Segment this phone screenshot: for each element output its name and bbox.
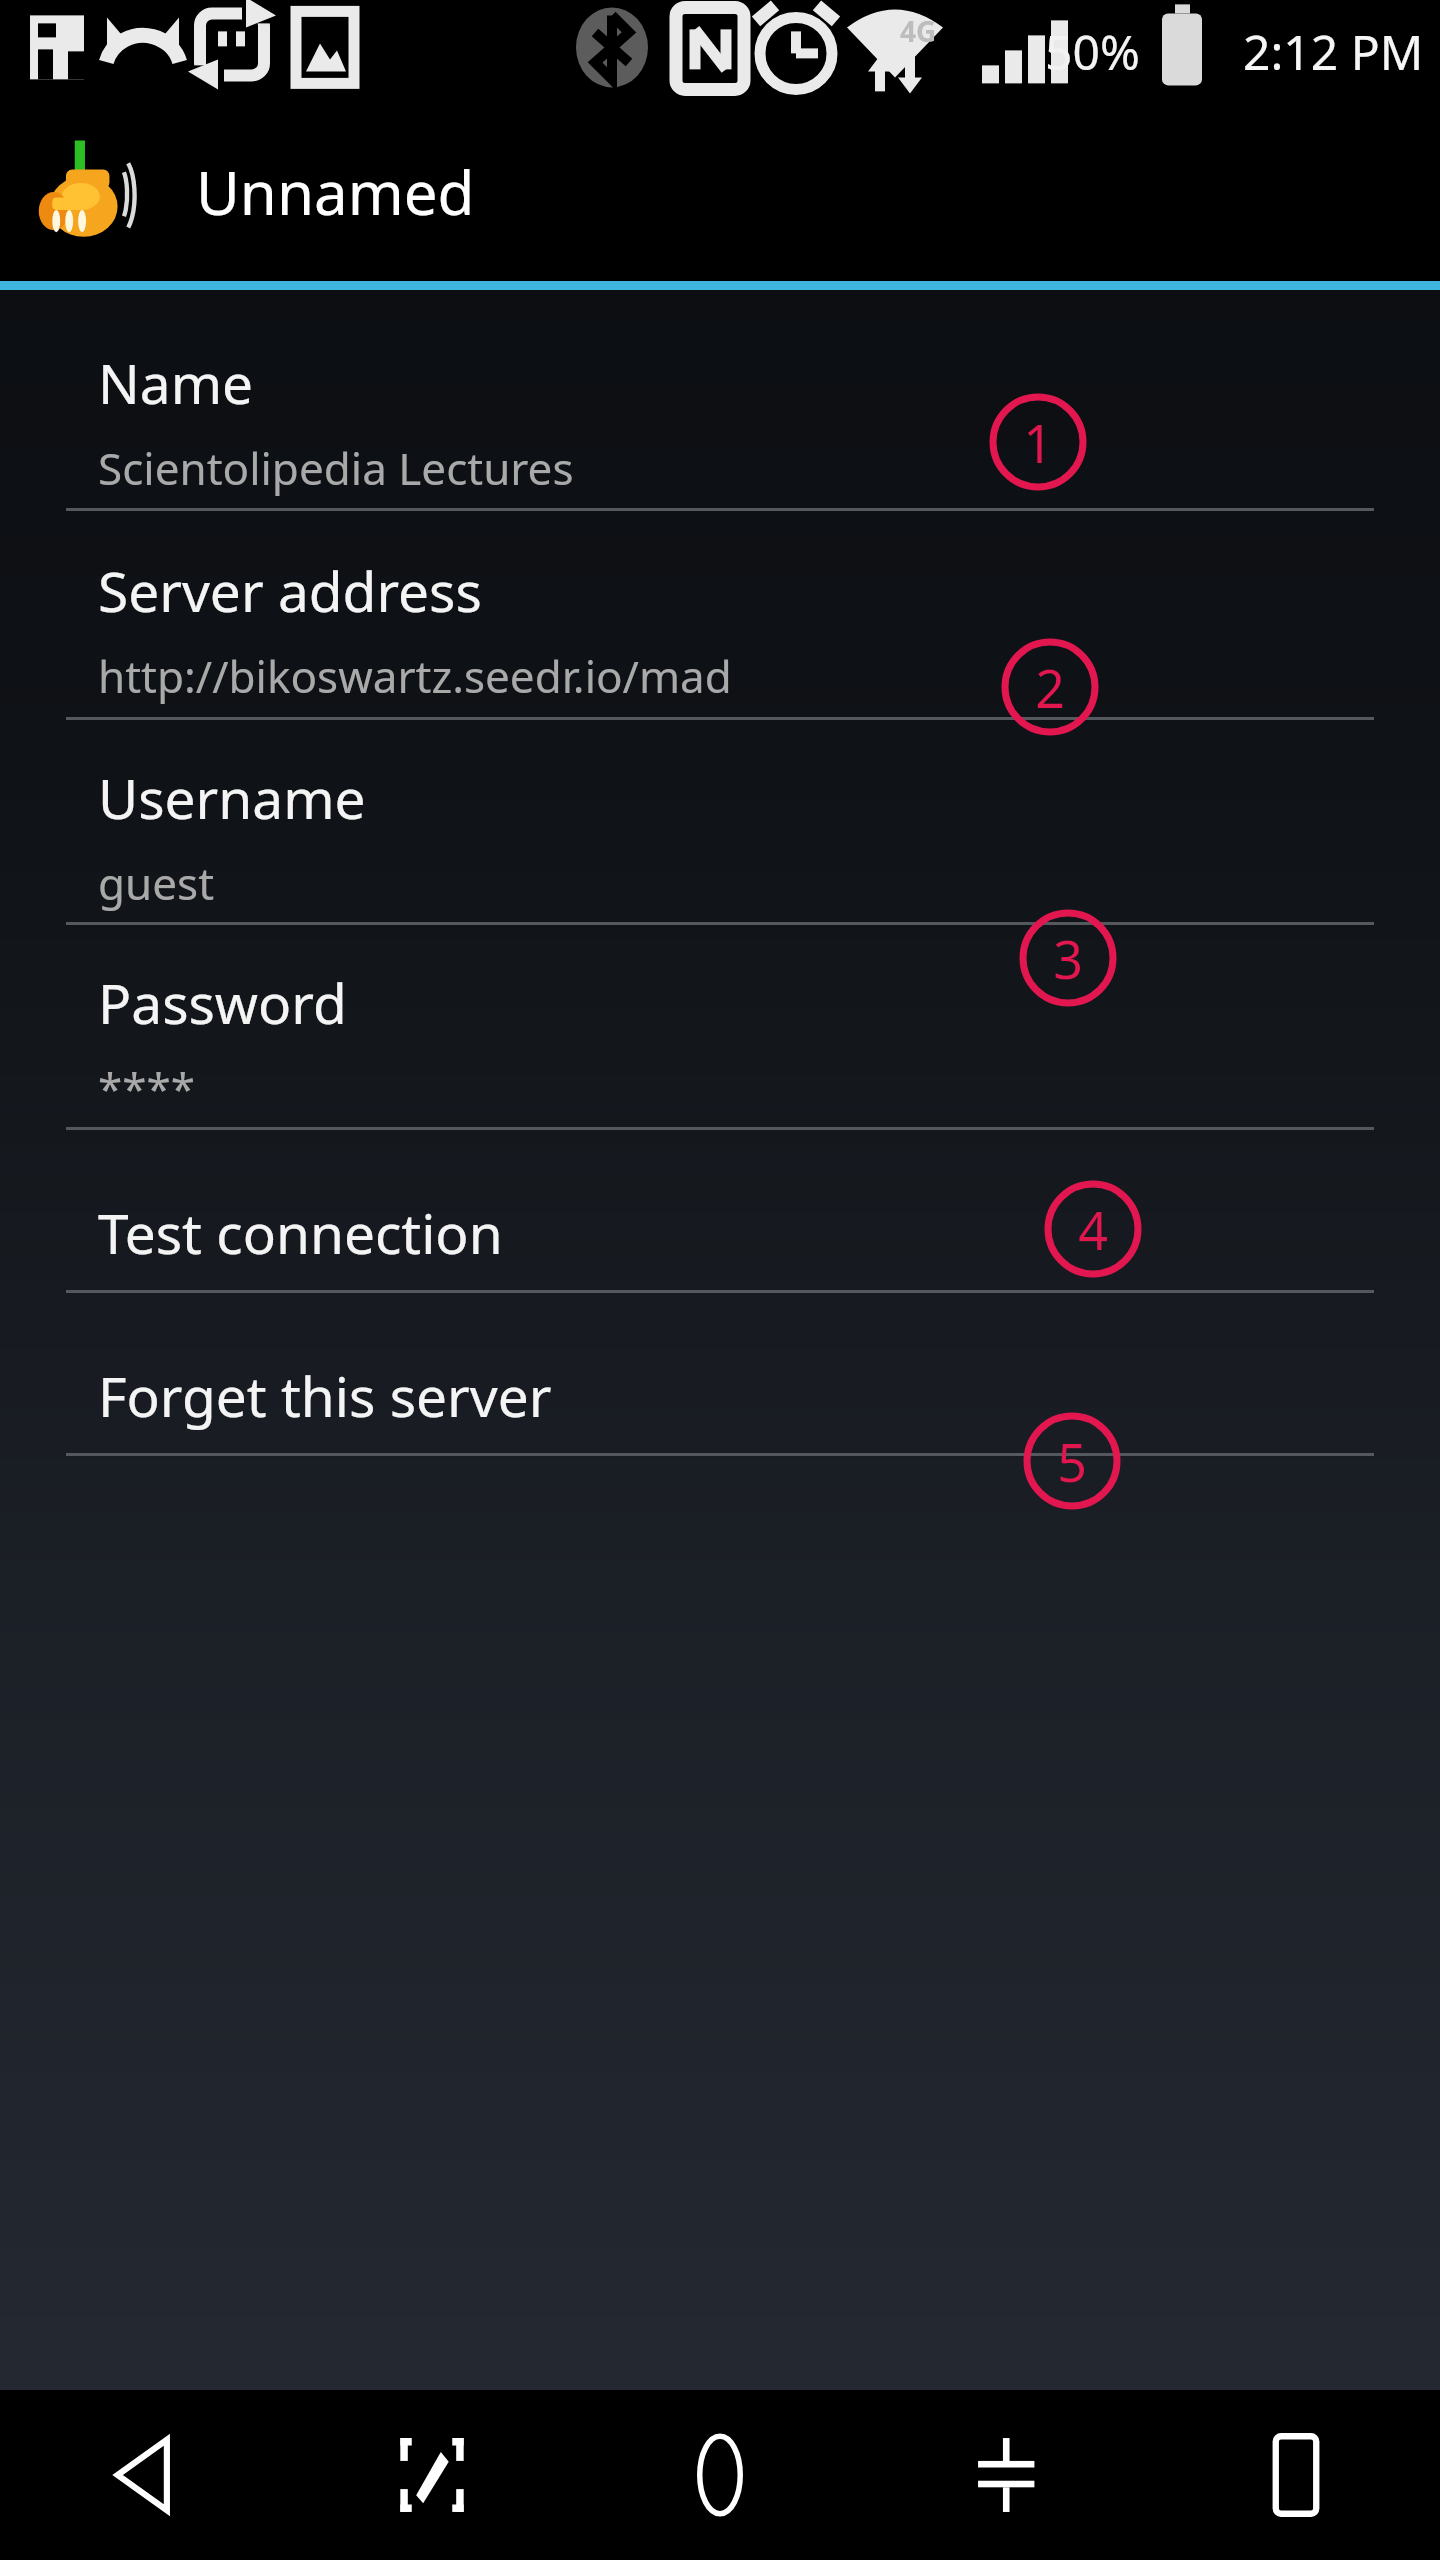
staticText: Unnamed <box>196 151 475 233</box>
staticText: Name <box>98 345 254 420</box>
button[interactable]: Back <box>0 2390 288 2560</box>
staticText: Test connection <box>98 1195 503 1270</box>
staticText: 3 <box>1053 923 1083 994</box>
staticText: Server address <box>98 553 482 628</box>
button[interactable]: Name <box>0 334 1440 508</box>
button[interactable]: Username <box>0 750 1440 922</box>
staticText: 5 <box>1057 1426 1087 1497</box>
button[interactable]: Home <box>576 2390 864 2560</box>
button[interactable]: Password <box>0 955 1440 1127</box>
staticText: 2:12 PM <box>1243 19 1424 84</box>
staticText: Username <box>98 760 366 835</box>
staticText: 4G <box>900 12 937 50</box>
button[interactable]: Forget this server <box>0 1337 1440 1453</box>
staticText: http://bikoswartz.seedr.io/mad <box>98 646 732 706</box>
staticText: 4 <box>1078 1194 1108 1265</box>
button[interactable]: Recents <box>1152 2390 1440 2560</box>
staticText: 50% <box>1045 19 1140 84</box>
button[interactable]: Test connection <box>0 1174 1440 1290</box>
staticText: **** <box>98 1058 195 1118</box>
staticText: guest <box>98 853 215 913</box>
button[interactable]: Split screen <box>864 2390 1152 2560</box>
other: App logo <box>36 136 172 248</box>
staticText: 1 <box>1023 407 1053 478</box>
button[interactable]: App logo <box>0 103 1440 281</box>
button[interactable]: Server address <box>0 541 1440 717</box>
staticText: Forget this server <box>98 1358 552 1433</box>
staticText: 2 <box>1035 652 1065 723</box>
staticText: Password <box>98 965 347 1040</box>
button[interactable]: Screenshot <box>288 2390 576 2560</box>
staticText: Scientolipedia Lectures <box>98 438 574 498</box>
